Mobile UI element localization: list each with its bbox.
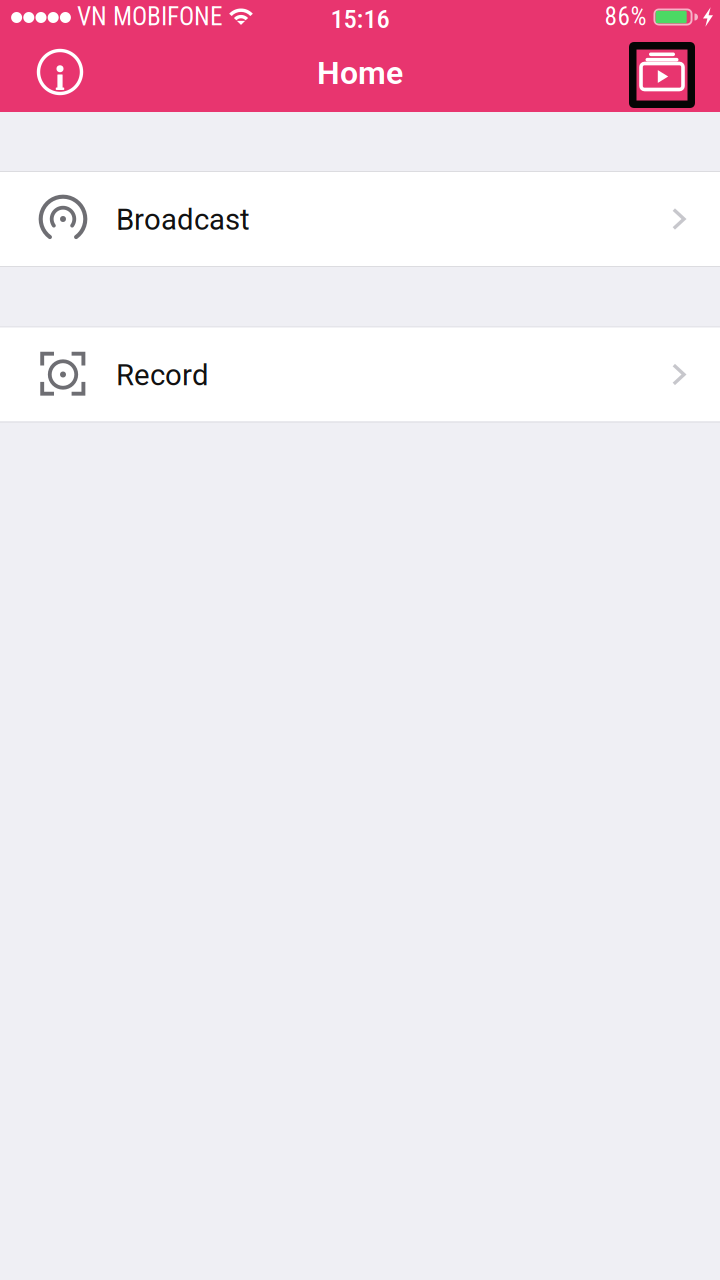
staticText: Home xyxy=(317,54,403,92)
staticText: Broadcast xyxy=(116,202,250,237)
button[interactable]: Info xyxy=(28,43,92,107)
button[interactable]: Record xyxy=(0,327,720,421)
button[interactable]: Videos xyxy=(629,42,695,108)
staticText: Record xyxy=(116,358,209,392)
staticText: 86% xyxy=(604,2,646,31)
staticText: VN MOBIFONE xyxy=(77,2,223,31)
button[interactable]: Broadcast xyxy=(0,172,720,266)
staticText: 15:16 xyxy=(330,3,389,35)
